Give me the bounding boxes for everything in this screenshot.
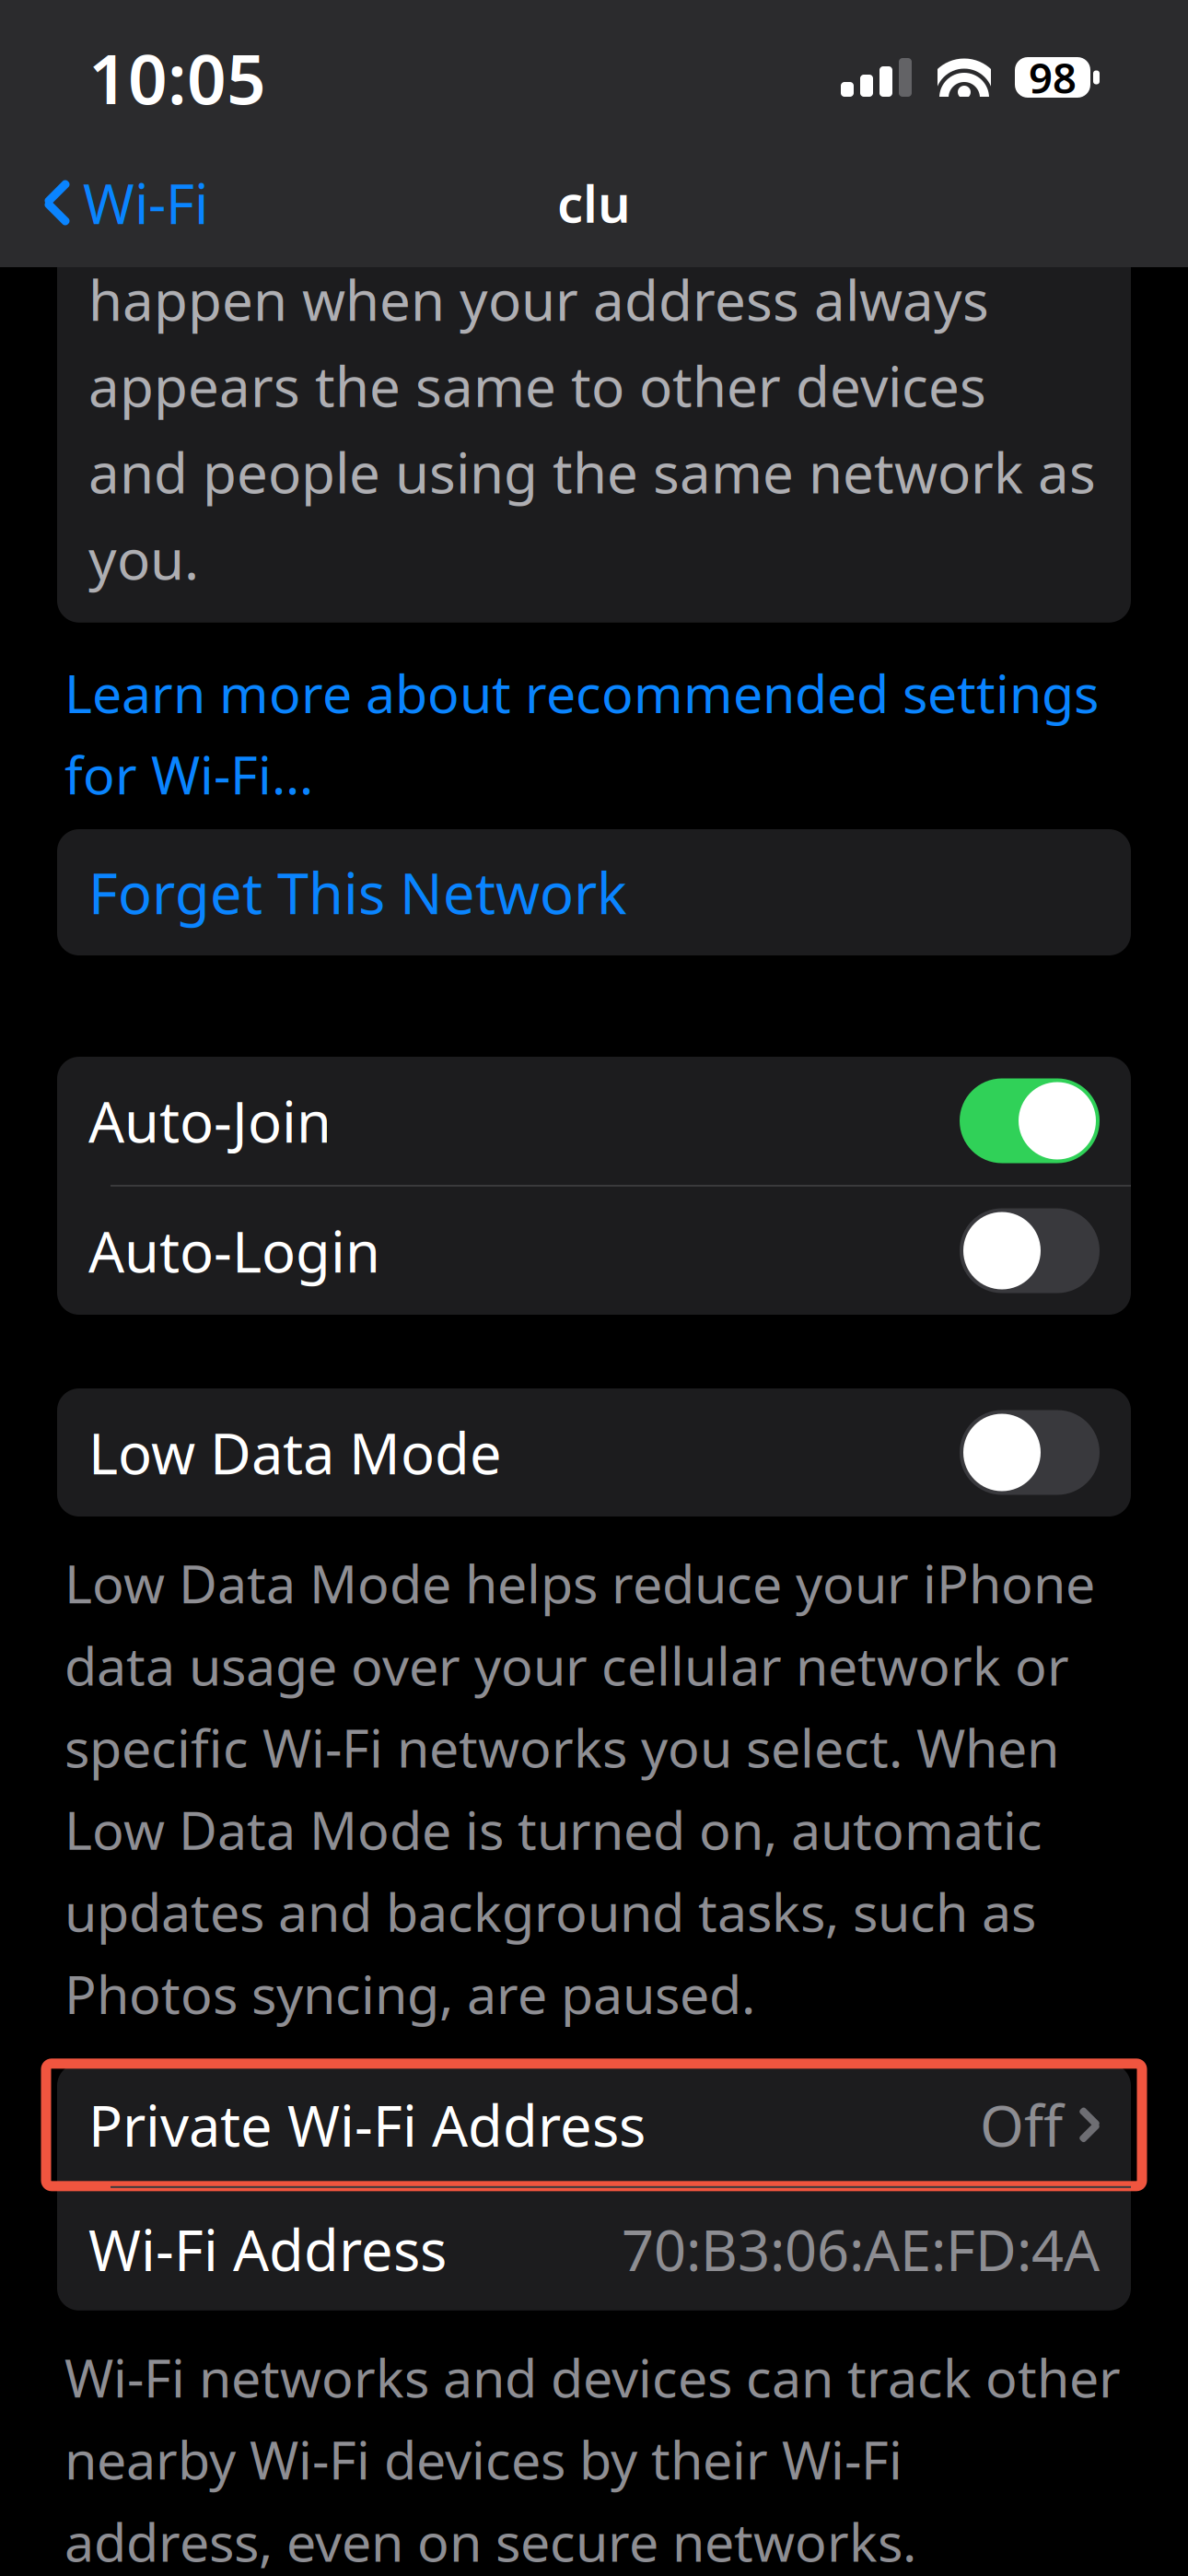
staticText: Learn more about recommended settings fo…: [64, 658, 1099, 809]
staticText: Private Wi-Fi Address: [88, 2087, 646, 2162]
staticText: clu: [557, 168, 631, 237]
staticText: 98: [1029, 50, 1077, 105]
staticText: 10:05: [88, 32, 266, 123]
staticText: 70:B3:06:AE:FD:4A: [622, 2212, 1100, 2287]
staticText: Wi-Fi Address: [88, 2212, 447, 2287]
staticText: Wi-Fi: [83, 166, 208, 239]
staticText: Low Data Mode helps reduce your iPhone d…: [64, 1548, 1095, 2029]
button[interactable]: Auto-Join: [57, 1057, 1131, 1185]
button[interactable]: Private Wi-Fi Address: [57, 2064, 1131, 2186]
staticText: Wi-Fi networks and devices can track oth…: [64, 2342, 1121, 2576]
staticText: Off: [980, 2087, 1063, 2162]
button[interactable]: Learn more about recommended settings fo…: [0, 623, 1188, 829]
staticText: Low Data Mode: [88, 1415, 502, 1490]
button[interactable]: Low Data Mode: [57, 1388, 1131, 1516]
staticText: Auto-Login: [88, 1213, 380, 1288]
button[interactable]: Wi-Fi: [37, 151, 215, 254]
button[interactable]: Auto-Login: [57, 1187, 1131, 1315]
staticText: Forget This Network: [88, 855, 627, 930]
button[interactable]: Forget This Network: [0, 829, 1188, 955]
staticText: A rotating Wi-Fi address helps reduce tr…: [88, 4, 1096, 595]
staticText: Auto-Join: [88, 1083, 332, 1158]
